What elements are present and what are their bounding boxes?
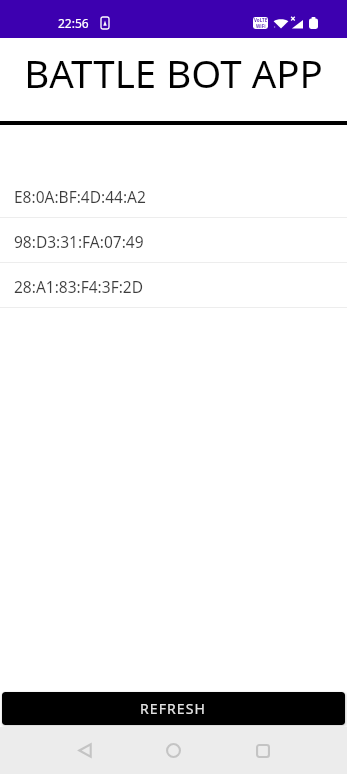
staticText: 98:D3:31:FA:07:49 [14,231,144,252]
staticText: 28:A1:83:F4:3F:2D [14,276,144,297]
staticText: WiFi [256,23,266,29]
button[interactable]: 28:A1:83:F4:3F:2D [0,263,347,308]
staticText: REFRESH [140,699,207,718]
staticText: BATTLE BOT APP [24,47,323,99]
staticText: VoLTE [254,17,268,23]
button[interactable]: Back [40,727,129,774]
button[interactable]: Recent apps [218,727,307,774]
button[interactable]: REFRESH [2,692,345,725]
staticText: E8:0A:BF:4D:44:A2 [14,186,146,207]
button[interactable]: Home [129,727,218,774]
button[interactable]: 98:D3:31:FA:07:49 [0,218,347,263]
button[interactable]: E8:0A:BF:4D:44:A2 [0,173,347,218]
staticText: 22:56 [58,15,89,31]
